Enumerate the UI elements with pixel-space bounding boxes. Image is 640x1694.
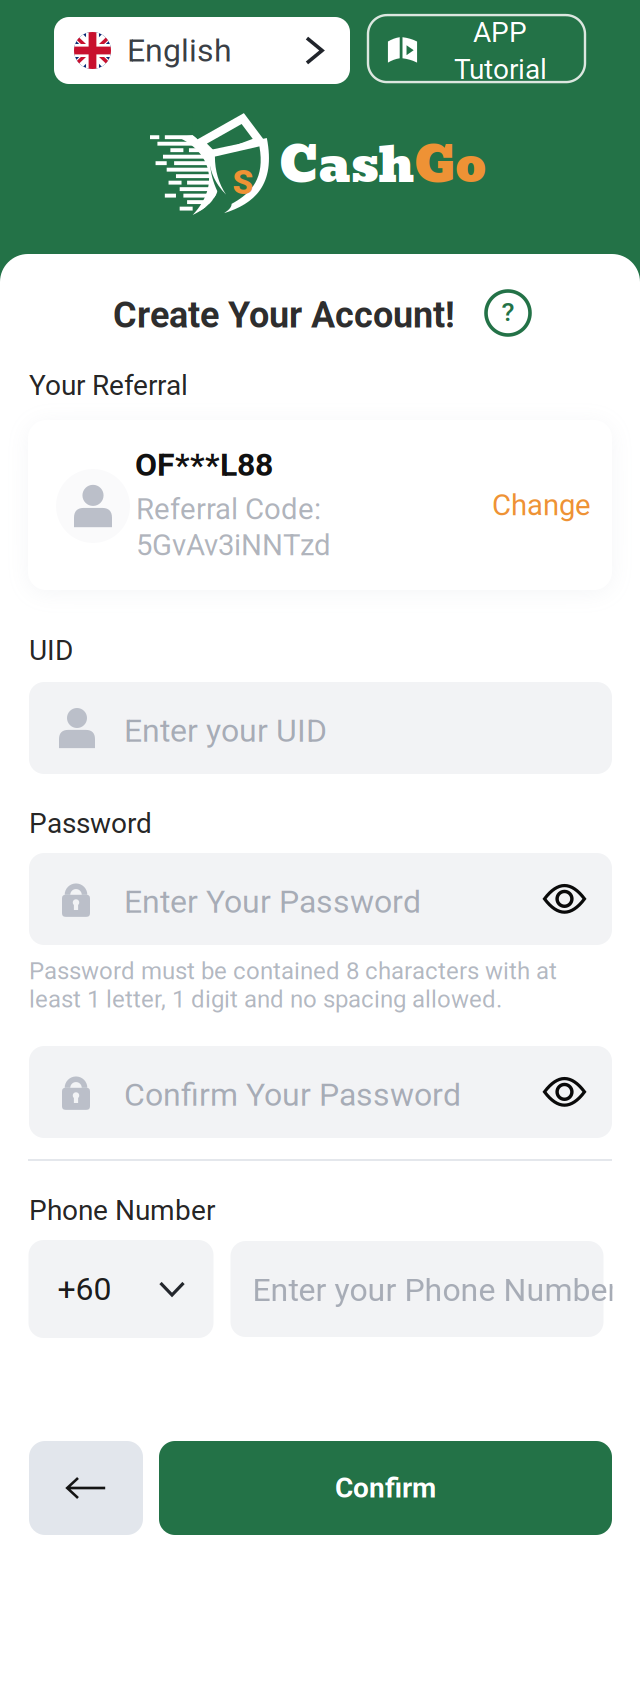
- staticText: S: [232, 163, 253, 202]
- button[interactable]: Confirm: [159, 1441, 612, 1535]
- staticText: 5GvAv3iNNTzd: [136, 528, 331, 562]
- staticText: Go: [414, 126, 486, 203]
- staticText: OF***L88: [135, 446, 273, 483]
- button[interactable]: Back: [29, 1441, 143, 1535]
- staticText: Confirm Your Password: [124, 1076, 461, 1113]
- staticText: APP: [473, 16, 527, 49]
- staticText: Confirm: [335, 1472, 436, 1504]
- staticText: Change: [492, 488, 591, 522]
- staticText: Create Your Account!: [113, 294, 455, 336]
- staticText: Enter Your Password: [124, 883, 421, 920]
- staticText: +60: [57, 1270, 111, 1308]
- button[interactable]: Confirm Your Password: [29, 1046, 612, 1138]
- staticText: Cash: [279, 126, 414, 203]
- staticText: Tutorial: [454, 53, 547, 86]
- staticText: Referral Code:: [136, 492, 321, 526]
- button[interactable]: English: [54, 17, 350, 84]
- staticText: UID: [29, 634, 73, 667]
- button[interactable]: Help: [486, 291, 530, 335]
- button[interactable]: Enter your UID: [29, 682, 612, 774]
- staticText: English: [127, 32, 232, 69]
- staticText: Enter your UID: [124, 712, 327, 749]
- button[interactable]: Enter your Phone Number: [230, 1241, 612, 1337]
- staticText: Your Referral: [29, 369, 188, 402]
- button[interactable]: APP: [368, 17, 585, 84]
- button[interactable]: Change: [492, 488, 591, 522]
- button[interactable]: +60: [28, 1240, 213, 1338]
- staticText: Password must be contained 8 characters …: [29, 957, 557, 1013]
- staticText: ?: [501, 296, 514, 328]
- staticText: Enter your Phone Number: [252, 1271, 618, 1309]
- staticText: Phone Number: [29, 1194, 215, 1227]
- button[interactable]: Enter Your Password: [29, 853, 612, 945]
- staticText: Password: [29, 807, 152, 840]
